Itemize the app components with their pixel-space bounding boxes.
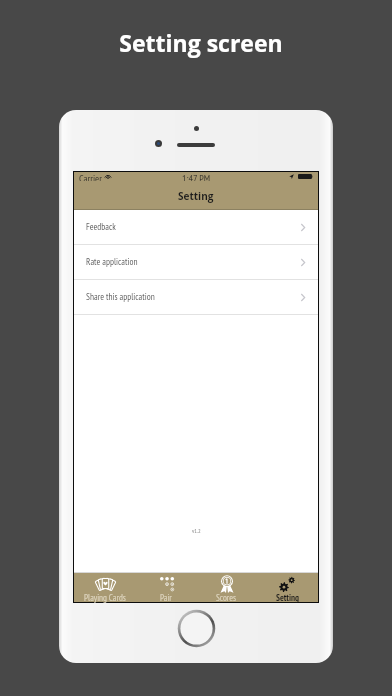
staticText: Carrier	[79, 172, 102, 181]
button[interactable]: Rate application	[74, 245, 318, 279]
staticText: Scores	[216, 592, 237, 604]
button[interactable]: Pair tab	[135, 573, 196, 602]
staticText: Rate application	[86, 256, 138, 268]
staticText: 1:47 PM	[182, 172, 211, 181]
button[interactable]: Setting tab	[257, 573, 318, 602]
button[interactable]: Feedback	[74, 210, 318, 244]
button[interactable]: Playing Cards tab	[74, 573, 135, 602]
staticText: Setting screen	[5, 27, 392, 58]
button[interactable]: Share this application	[74, 280, 318, 314]
staticText: Setting	[276, 592, 300, 604]
staticText: Feedback	[86, 221, 116, 233]
staticText: Share this application	[86, 291, 155, 303]
staticText: v1.2	[192, 527, 201, 535]
button[interactable]: Scores tab	[196, 573, 257, 602]
staticText: Playing Cards	[84, 592, 126, 604]
staticText: Setting	[178, 189, 214, 203]
staticText: Pair	[160, 592, 172, 604]
